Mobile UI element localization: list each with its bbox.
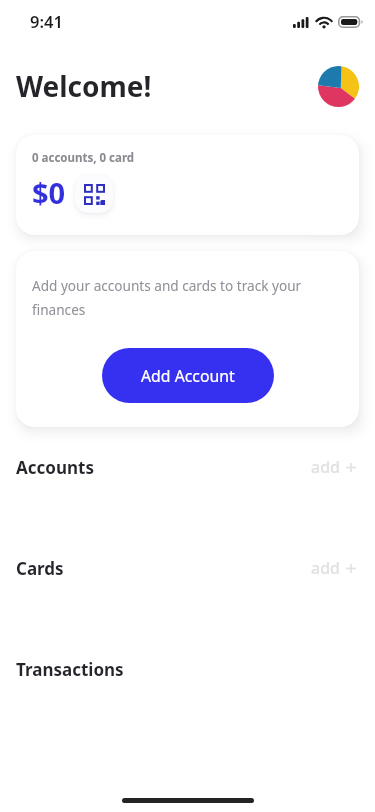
staticText: add <box>311 557 340 579</box>
button[interactable]: Add Account <box>102 348 274 403</box>
staticText: Accounts <box>16 456 94 479</box>
button[interactable]: add Accounts <box>311 456 356 478</box>
staticText: 9:41 <box>30 10 63 32</box>
button[interactable]: Profile <box>318 66 359 107</box>
staticText: Add Account <box>141 365 235 387</box>
button[interactable]: 0 accounts, 0 card <box>16 135 359 235</box>
staticText: Cards <box>16 557 64 580</box>
button[interactable]: add Cards <box>311 557 356 579</box>
staticText: add <box>311 456 340 478</box>
staticText: $0 <box>32 173 66 212</box>
staticText: Transactions <box>16 658 124 681</box>
staticText: 0 accounts, 0 card <box>32 150 135 166</box>
button[interactable]: Scan QR code <box>75 175 113 213</box>
staticText: Add your accounts and cards to track you… <box>32 276 322 319</box>
staticText: Welcome! <box>16 67 152 105</box>
